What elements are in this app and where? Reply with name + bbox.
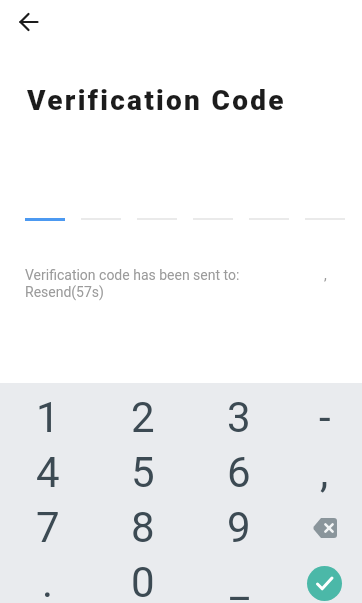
staticText: Verification Code <box>27 84 286 117</box>
staticText: 9 <box>227 503 251 552</box>
button[interactable]: _ <box>191 555 287 603</box>
button[interactable]: 8 <box>95 500 191 555</box>
staticText: 6 <box>227 448 251 497</box>
staticText: _ <box>230 558 249 603</box>
staticText: , <box>324 267 327 283</box>
staticText: 4 <box>36 448 60 497</box>
button[interactable]: , <box>287 445 362 500</box>
staticText: - <box>319 393 331 442</box>
button[interactable]: 4 <box>0 445 95 500</box>
button[interactable]: 2 <box>95 390 191 445</box>
staticText: 3 <box>227 393 251 442</box>
button[interactable]: 0 <box>95 555 191 603</box>
button[interactable]: 3 <box>191 390 287 445</box>
button[interactable]: 1 <box>0 390 95 445</box>
button[interactable]: 5 <box>95 445 191 500</box>
button[interactable]: 7 <box>0 500 95 555</box>
staticText: 1 <box>36 393 60 442</box>
staticText: Verification code has been sent to: <box>25 267 240 283</box>
button[interactable] <box>287 500 362 555</box>
button[interactable]: - <box>287 390 362 445</box>
staticText: 8 <box>131 503 155 552</box>
button[interactable] <box>287 555 362 603</box>
button[interactable]: . <box>0 555 95 603</box>
button[interactable]: 6 <box>191 445 287 500</box>
button[interactable]: 9 <box>191 500 287 555</box>
button[interactable]: Resend(57s) <box>25 284 104 300</box>
staticText: 0 <box>131 558 155 603</box>
staticText: 5 <box>131 448 155 497</box>
staticText: 2 <box>131 393 155 442</box>
staticText: 7 <box>36 503 60 552</box>
button[interactable] <box>13 6 45 38</box>
staticText: . <box>42 558 54 603</box>
staticText: , <box>320 448 329 497</box>
